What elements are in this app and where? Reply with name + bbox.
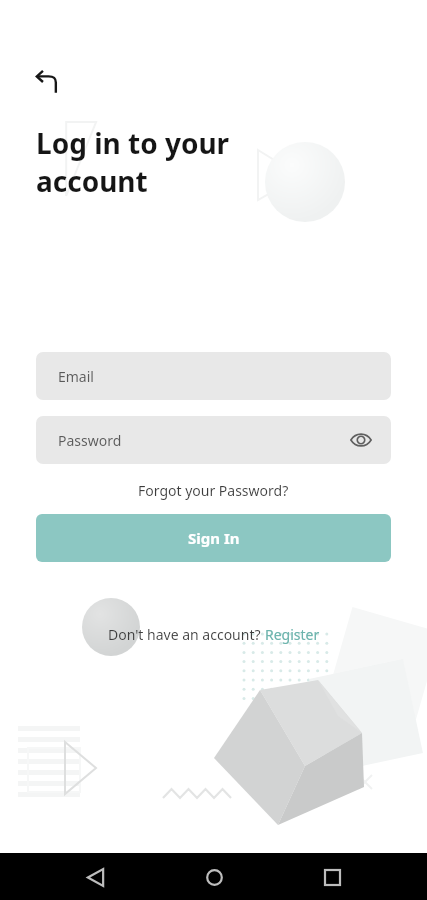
button[interactable]: Register xyxy=(265,625,320,644)
staticText: Password xyxy=(58,431,122,450)
staticText: Forgot your Password? xyxy=(138,481,289,500)
staticText: Register xyxy=(265,625,320,644)
staticText: Don't have an account? xyxy=(108,625,265,644)
staticText: Email xyxy=(58,367,94,386)
button[interactable]: Back xyxy=(72,854,118,900)
button[interactable]: Back xyxy=(24,58,72,106)
button[interactable]: Recent apps xyxy=(309,854,355,900)
button[interactable]: Password xyxy=(36,416,391,464)
button[interactable]: Show password xyxy=(343,422,379,458)
button[interactable]: Forgot your Password? xyxy=(0,478,427,503)
button[interactable]: Sign In xyxy=(36,514,391,562)
staticText: Log in to your account xyxy=(36,124,230,200)
button[interactable]: Email xyxy=(36,352,391,400)
staticText: Sign In xyxy=(188,528,240,548)
button[interactable]: Home xyxy=(191,854,237,900)
